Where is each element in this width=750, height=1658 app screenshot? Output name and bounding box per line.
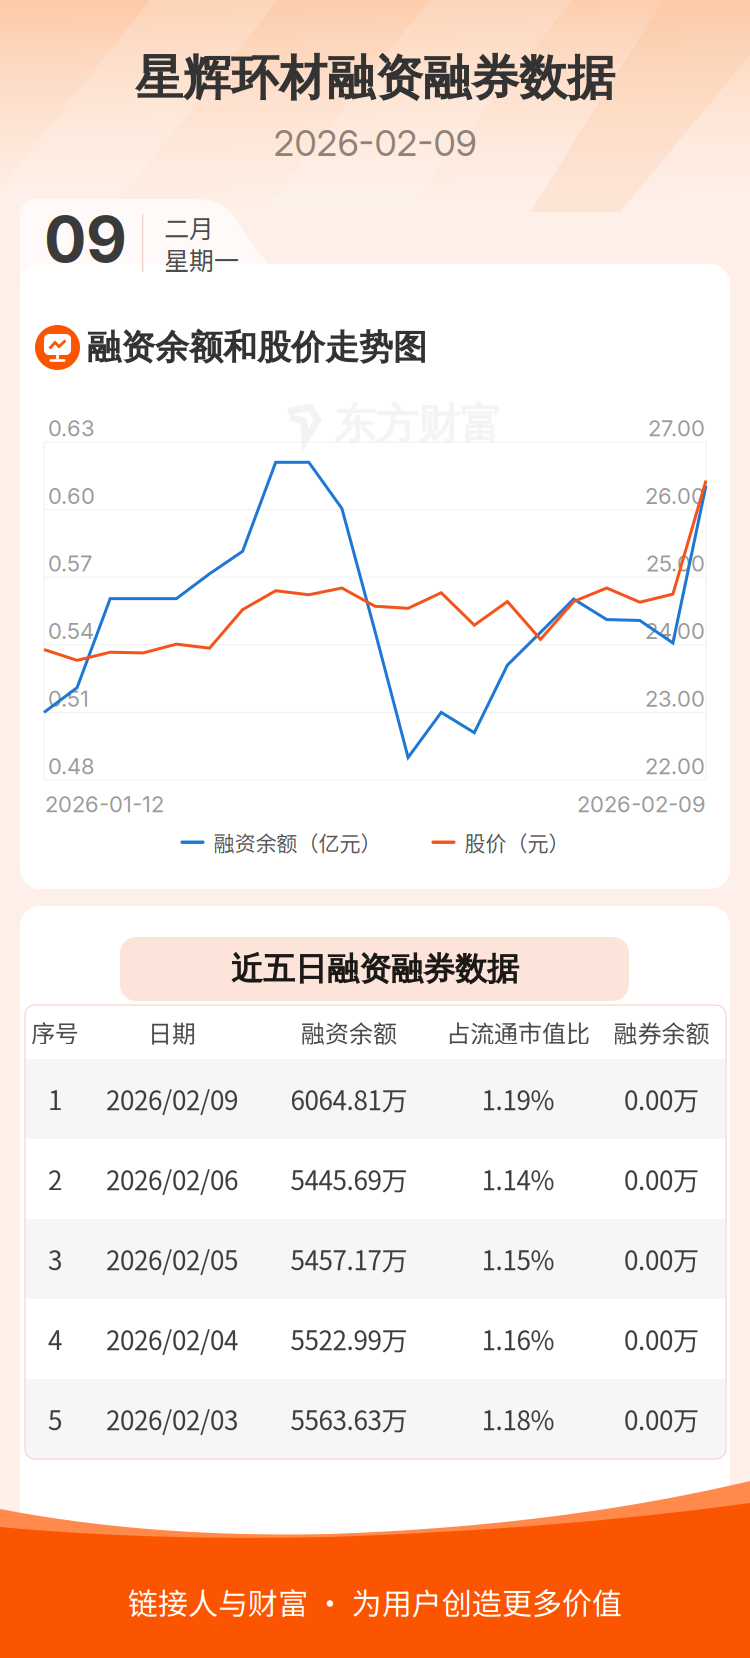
staticText: 4 <box>48 1320 62 1358</box>
staticText: 近五日融资融券数据 <box>231 949 519 989</box>
staticText: 1.19% <box>481 1080 554 1118</box>
staticText: 0.60 <box>48 483 95 509</box>
staticText: 2026-01-12 <box>45 791 164 818</box>
staticText: 融资余额 <box>301 1015 397 1049</box>
staticText: 序号 <box>31 1015 79 1049</box>
staticText: 2026/02/03 <box>106 1400 238 1438</box>
staticText: 5563.63万 <box>290 1400 407 1438</box>
staticText: 二月 <box>164 209 214 245</box>
staticText: 0.51 <box>48 685 89 712</box>
staticText: 链接人与财富 · 为用户创造更多价值 <box>128 1580 622 1623</box>
staticText: 2 <box>48 1160 62 1198</box>
staticText: 1.16% <box>481 1320 554 1358</box>
staticText: 融券余额 <box>613 1015 709 1049</box>
staticText: 27.00 <box>648 415 705 442</box>
staticText: 融资余额（亿元） <box>213 827 381 857</box>
staticText: 23.00 <box>645 685 705 712</box>
staticText: 0.00万 <box>624 1080 699 1118</box>
staticText: 26.00 <box>645 483 705 509</box>
staticText: 2026/02/09 <box>106 1080 238 1118</box>
staticText: 24.00 <box>645 618 705 644</box>
staticText: 0.48 <box>48 753 95 780</box>
staticText: 2026/02/05 <box>106 1240 238 1278</box>
staticText: 0.57 <box>48 550 92 577</box>
staticText: 0.00万 <box>624 1160 699 1198</box>
staticText: 0.00万 <box>624 1240 699 1278</box>
staticText: 2026/02/06 <box>106 1160 238 1198</box>
staticText: 0.00万 <box>624 1400 699 1438</box>
staticText: 1 <box>48 1080 62 1118</box>
staticText: 东方财富 <box>334 398 502 451</box>
staticText: 0.00万 <box>624 1320 699 1358</box>
staticText: 3 <box>48 1240 62 1278</box>
staticText: 融资余额和股价走势图 <box>87 326 427 369</box>
staticText: 股价（元） <box>464 827 569 857</box>
staticText: 2026-02-09 <box>273 121 476 165</box>
staticText: 占流通市值比 <box>446 1015 590 1049</box>
staticText: 星期一 <box>164 241 239 277</box>
staticText: 2026/02/04 <box>106 1320 238 1358</box>
staticText: 1.15% <box>481 1240 554 1278</box>
staticText: 5457.17万 <box>290 1240 407 1278</box>
staticText: 日期 <box>148 1015 196 1049</box>
staticText: 5 <box>48 1400 62 1438</box>
staticText: 1.14% <box>481 1160 554 1198</box>
staticText: 1.18% <box>481 1400 554 1438</box>
staticText: 5522.99万 <box>290 1320 407 1358</box>
staticText: 25.00 <box>646 550 705 577</box>
staticText: 09 <box>44 201 127 277</box>
staticText: 0.63 <box>48 415 95 442</box>
staticText: 6064.81万 <box>290 1080 407 1118</box>
staticText: 0.54 <box>48 618 94 644</box>
staticText: 2026-02-09 <box>577 791 706 818</box>
staticText: 5445.69万 <box>290 1160 407 1198</box>
staticText: 22.00 <box>645 753 705 780</box>
staticText: 星辉环材融资融券数据 <box>135 48 615 108</box>
